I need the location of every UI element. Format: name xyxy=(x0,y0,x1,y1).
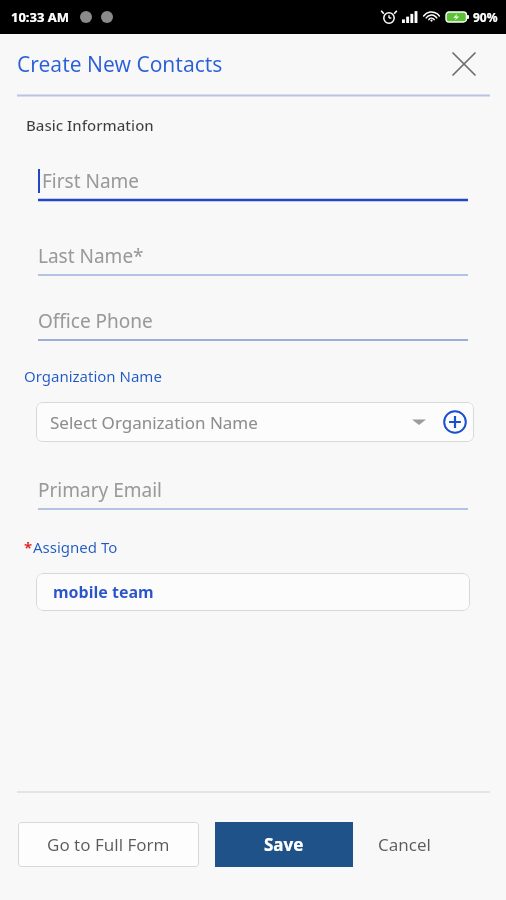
staticText: First Name xyxy=(42,168,140,194)
staticText: * xyxy=(24,537,33,557)
button[interactable]: Select Organization Name xyxy=(36,402,474,442)
button[interactable]: Cancel xyxy=(378,822,431,867)
button[interactable]: Save xyxy=(215,822,353,867)
staticText: 10:33 AM xyxy=(11,8,70,26)
staticText: Primary Email xyxy=(38,477,162,503)
staticText: Assigned To xyxy=(33,537,118,557)
staticText: Office Phone xyxy=(38,308,153,334)
staticText: Cancel xyxy=(378,833,431,856)
staticText: Save xyxy=(264,833,304,856)
staticText: Select Organization Name xyxy=(50,411,412,434)
staticText: Organization Name xyxy=(24,366,162,386)
staticText: 90% xyxy=(473,9,498,25)
button[interactable]: Add organization xyxy=(438,405,472,439)
staticText: mobile team xyxy=(53,581,154,603)
staticText: Go to Full Form xyxy=(47,833,170,856)
button[interactable]: mobile team xyxy=(36,573,470,611)
staticText: Basic Information xyxy=(26,115,154,135)
staticText: Create New Contacts xyxy=(17,50,223,79)
button[interactable]: Close xyxy=(444,44,484,84)
staticText: Last Name* xyxy=(38,243,144,269)
button[interactable]: Go to Full Form xyxy=(18,822,199,867)
